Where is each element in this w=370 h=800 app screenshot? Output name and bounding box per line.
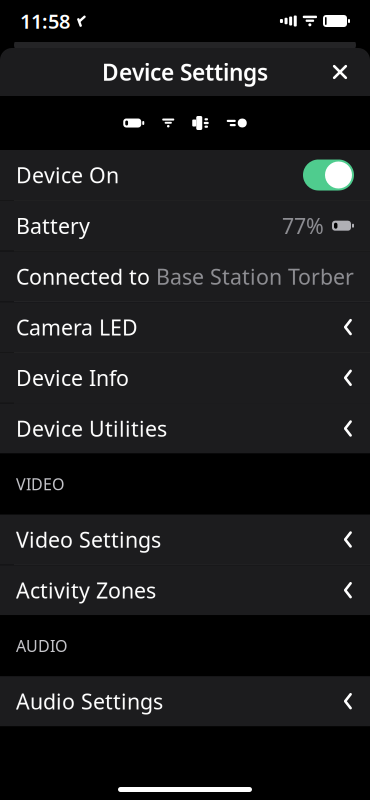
staticText: Video Settings: [16, 525, 161, 554]
button[interactable]: Camera LED: [0, 302, 370, 352]
staticText: Camera LED: [16, 313, 138, 341]
staticText: Battery: [16, 211, 90, 240]
staticText: Base Station Torber: [156, 262, 354, 290]
staticText: Device Settings: [102, 57, 268, 87]
button[interactable]: Device On: [303, 159, 354, 190]
button[interactable]: Video Settings: [0, 514, 370, 564]
staticText: AUDIO: [16, 635, 67, 656]
staticText: 11:58: [20, 8, 70, 34]
button[interactable]: Audio Settings: [0, 676, 370, 726]
button[interactable]: Activity Zones: [0, 565, 370, 615]
staticText: Connected to: [16, 262, 150, 290]
staticText: 77%: [282, 211, 324, 240]
staticText: Activity Zones: [16, 576, 156, 604]
staticText: VIDEO: [16, 473, 64, 495]
button[interactable]: Device Info: [0, 353, 370, 403]
staticText: Device Info: [16, 364, 129, 392]
button[interactable]: Close: [318, 50, 362, 94]
staticText: Audio Settings: [16, 687, 163, 715]
staticText: Device On: [16, 161, 119, 189]
staticText: Device Utilities: [16, 414, 167, 443]
button[interactable]: Device Utilities: [0, 403, 370, 453]
